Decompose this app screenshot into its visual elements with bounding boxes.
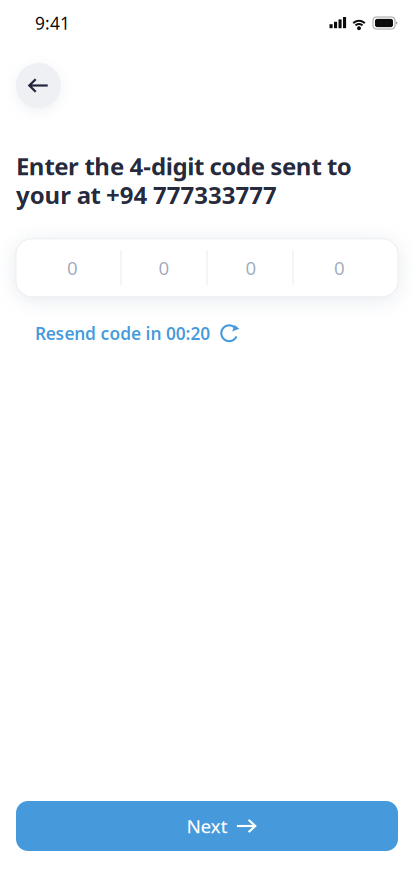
button[interactable]: Back [16, 63, 61, 108]
staticText: 0 [67, 255, 78, 280]
button[interactable]: 0 [207, 239, 292, 297]
button[interactable]: 0 [293, 239, 397, 297]
staticText: 0 [158, 255, 169, 280]
staticText: Resend code in 00:20 [35, 322, 210, 345]
staticText: 0 [334, 255, 345, 280]
staticText: Enter the 4-digit code sent to your at +… [16, 150, 352, 211]
button[interactable]: Next [16, 801, 398, 851]
staticText: 0 [245, 255, 256, 280]
button[interactable]: 0 [16, 239, 120, 297]
staticText: Next [186, 814, 227, 838]
button[interactable]: Resend code in 00:20 [35, 322, 241, 345]
staticText: 9:41 [35, 11, 70, 34]
button[interactable]: 0 [121, 239, 206, 297]
